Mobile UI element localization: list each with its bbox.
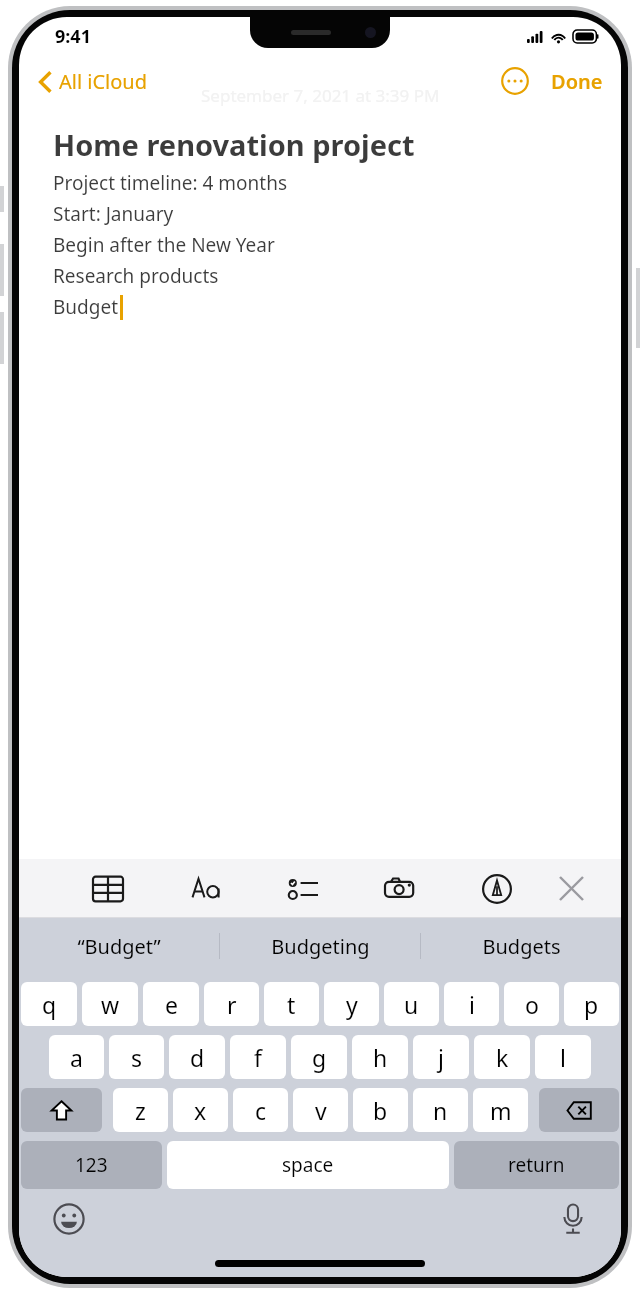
- button[interactable]: Format text: [157, 859, 254, 918]
- button[interactable]: Done: [547, 64, 607, 99]
- button[interactable]: s: [109, 1035, 164, 1079]
- staticText: i: [469, 989, 475, 1020]
- button[interactable]: j: [413, 1035, 469, 1079]
- staticText: Start: January: [53, 201, 174, 227]
- button[interactable]: z: [113, 1088, 168, 1132]
- staticText: s: [131, 1042, 143, 1073]
- button[interactable]: m: [473, 1088, 528, 1132]
- button[interactable]: e: [143, 982, 199, 1026]
- staticText: t: [287, 989, 296, 1020]
- button[interactable]: i: [444, 982, 499, 1026]
- button[interactable]: Close toolbar: [545, 859, 597, 918]
- button[interactable]: space: [167, 1141, 449, 1189]
- staticText: o: [525, 989, 539, 1020]
- button[interactable]: x: [173, 1088, 228, 1132]
- button[interactable]: Budgets: [421, 918, 621, 974]
- button[interactable]: u: [384, 982, 439, 1026]
- button[interactable]: q: [21, 982, 77, 1026]
- button[interactable]: Emoji: [49, 1199, 89, 1239]
- button[interactable]: k: [474, 1035, 530, 1079]
- staticText: l: [560, 1042, 566, 1073]
- button[interactable]: More options: [497, 63, 533, 99]
- button[interactable]: b: [353, 1088, 408, 1132]
- staticText: All iCloud: [59, 68, 148, 95]
- staticText: h: [373, 1042, 388, 1073]
- staticText: d: [190, 1042, 205, 1073]
- staticText: q: [42, 989, 57, 1020]
- staticText: r: [227, 989, 237, 1020]
- staticText: c: [255, 1095, 267, 1126]
- staticText: x: [194, 1095, 207, 1126]
- staticText: f: [254, 1042, 262, 1073]
- button[interactable]: t: [264, 982, 319, 1026]
- button[interactable]: r: [204, 982, 259, 1026]
- button[interactable]: p: [564, 982, 619, 1026]
- button[interactable]: Markup: [448, 859, 545, 918]
- staticText: g: [312, 1042, 327, 1073]
- staticText: w: [101, 989, 120, 1020]
- staticText: Research products: [53, 263, 219, 289]
- staticText: u: [404, 989, 419, 1020]
- button[interactable]: Table: [59, 859, 157, 918]
- staticText: v: [315, 1095, 327, 1126]
- staticText: y: [346, 989, 358, 1020]
- staticText: 123: [75, 1152, 108, 1178]
- staticText: z: [135, 1095, 146, 1126]
- button[interactable]: l: [535, 1035, 591, 1079]
- button[interactable]: g: [291, 1035, 347, 1079]
- staticText: e: [165, 989, 178, 1020]
- staticText: Project timeline: 4 months: [53, 170, 288, 196]
- button[interactable]: v: [293, 1088, 348, 1132]
- staticText: “Budget”: [77, 933, 161, 960]
- button[interactable]: 123: [21, 1141, 162, 1189]
- button[interactable]: y: [324, 982, 379, 1026]
- staticText: space: [282, 1152, 334, 1178]
- staticText: Home renovation project: [53, 125, 415, 164]
- button[interactable]: d: [169, 1035, 225, 1079]
- staticText: Begin after the New Year: [53, 232, 275, 258]
- button[interactable]: Camera: [351, 859, 448, 918]
- button[interactable]: Shift: [21, 1088, 102, 1132]
- button[interactable]: “Budget”: [19, 918, 219, 974]
- staticText: September 7, 2021 at 3:39 PM: [201, 84, 440, 107]
- staticText: Budgets: [482, 933, 561, 960]
- staticText: Done: [551, 68, 603, 95]
- button[interactable]: f: [230, 1035, 286, 1079]
- button[interactable]: Dictation: [557, 1199, 589, 1239]
- button[interactable]: h: [352, 1035, 408, 1079]
- button[interactable]: Budgeting: [220, 918, 420, 974]
- button[interactable]: w: [82, 982, 138, 1026]
- staticText: n: [433, 1095, 448, 1126]
- staticText: Budgeting: [271, 933, 370, 960]
- button[interactable]: a: [49, 1035, 104, 1079]
- staticText: b: [373, 1095, 388, 1126]
- staticText: k: [496, 1042, 509, 1073]
- button[interactable]: o: [504, 982, 559, 1026]
- button[interactable]: Backspace: [539, 1088, 619, 1132]
- button[interactable]: Checklist: [254, 859, 351, 918]
- button[interactable]: All iCloud: [33, 64, 154, 99]
- staticText: Budget: [53, 294, 119, 320]
- button[interactable]: c: [233, 1088, 288, 1132]
- button[interactable]: return: [454, 1141, 619, 1189]
- staticText: m: [490, 1095, 512, 1126]
- staticText: p: [584, 989, 599, 1020]
- staticText: j: [438, 1042, 444, 1073]
- button[interactable]: n: [413, 1088, 468, 1132]
- staticText: 9:41: [55, 24, 91, 49]
- staticText: return: [508, 1152, 565, 1178]
- staticText: a: [70, 1042, 83, 1073]
